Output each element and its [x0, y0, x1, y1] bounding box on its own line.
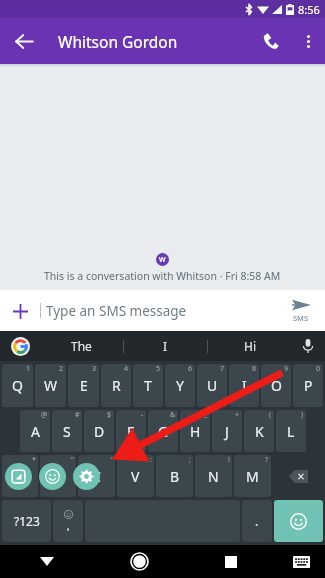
staticText: G [158, 422, 169, 441]
button[interactable]: Home [93, 545, 185, 578]
staticText: $ [107, 410, 112, 420]
staticText: + [235, 410, 240, 420]
staticText: " [71, 455, 74, 465]
staticText: ! [228, 455, 230, 465]
button[interactable]: N [195, 455, 232, 497]
staticText: ) [301, 410, 304, 420]
staticText: _ [204, 410, 208, 420]
button[interactable]: Emoji [274, 500, 323, 542]
button[interactable]: S [52, 410, 82, 452]
staticText: R [112, 376, 121, 395]
staticText: C [92, 467, 101, 486]
button[interactable]: L [276, 410, 306, 452]
staticText: S [63, 422, 71, 441]
button[interactable]: Emoji [39, 463, 66, 490]
button[interactable]: Call [251, 21, 291, 61]
staticText: 7 [220, 364, 225, 374]
button[interactable]: Stickers [5, 463, 32, 490]
button[interactable]: M [234, 455, 271, 497]
staticText: ?123 [14, 513, 40, 529]
button[interactable]: B [156, 455, 193, 497]
button[interactable]: Q [2, 364, 33, 407]
button[interactable]: Settings [73, 463, 100, 490]
button[interactable]: G [148, 410, 178, 452]
staticText: Q [12, 376, 23, 395]
staticText: K [255, 422, 264, 441]
button[interactable]: D [84, 410, 114, 452]
button[interactable]: O [261, 364, 291, 407]
button[interactable]: E [68, 364, 99, 407]
button[interactable]: Y [165, 364, 195, 407]
staticText: E [80, 376, 88, 395]
staticText: 4 [124, 364, 129, 374]
button[interactable]: Voice input [291, 331, 325, 361]
staticText: W [159, 255, 166, 265]
staticText: * [32, 455, 36, 465]
button[interactable]: Type an SMS message [40, 290, 277, 331]
button[interactable]: U [197, 364, 227, 407]
button[interactable]: Send SMS [277, 290, 325, 331]
staticText: B [170, 467, 180, 486]
button[interactable]: P [293, 364, 323, 407]
button[interactable]: A [20, 410, 50, 452]
staticText: @ [41, 410, 48, 420]
staticText: . [255, 513, 259, 529]
staticText: Type an SMS message [46, 302, 187, 320]
staticText: I [242, 376, 247, 395]
staticText: The [71, 338, 92, 354]
button[interactable]: More options [291, 24, 325, 58]
button[interactable]: K [244, 410, 274, 452]
button[interactable]: I [229, 364, 259, 407]
staticText: F [127, 422, 135, 441]
button[interactable]: R [101, 364, 131, 407]
staticText: This is a conversation with Whitson · Fr… [44, 269, 281, 283]
button[interactable]: F [116, 410, 146, 452]
staticText: 6 [188, 364, 193, 374]
button[interactable]: J [212, 410, 242, 452]
button[interactable]: Recent apps [185, 545, 277, 578]
staticText: X [54, 467, 63, 486]
button[interactable]: Hi [208, 331, 291, 361]
staticText: 8:56 [298, 2, 320, 17]
button[interactable]: C [78, 455, 115, 497]
button[interactable]: Hide keyboard [0, 545, 93, 578]
staticText: Y [176, 376, 184, 395]
staticText: U [207, 376, 218, 395]
staticText: - [141, 410, 144, 420]
button[interactable]: I [124, 331, 207, 361]
button[interactable]: Comma [53, 500, 83, 542]
staticText: & [170, 410, 176, 420]
button[interactable]: Google [0, 331, 40, 361]
button[interactable]: Z [2, 455, 38, 497]
staticText: 1 [26, 364, 31, 374]
staticText: 3 [92, 364, 97, 374]
button[interactable]: ?123 [2, 500, 51, 542]
button[interactable]: W [35, 364, 66, 407]
button[interactable]: Backspace [273, 455, 323, 497]
staticText: W [44, 376, 58, 395]
staticText: ? [265, 455, 269, 465]
staticText: 9 [284, 364, 289, 374]
staticText: Hi [244, 338, 256, 354]
staticText: 2 [59, 364, 64, 374]
staticText: ; [189, 455, 191, 465]
button[interactable]: Switch keyboard [277, 545, 325, 578]
button[interactable]: Add attachment [0, 291, 40, 331]
staticText: 0 [316, 364, 321, 374]
staticText: O [271, 376, 282, 395]
button[interactable]: The [40, 331, 123, 361]
staticText: 8 [252, 364, 257, 374]
staticText: J [225, 422, 229, 441]
staticText: ' [111, 455, 113, 465]
button[interactable]: . [242, 500, 272, 542]
staticText: H [190, 422, 201, 441]
button[interactable]: T [133, 364, 163, 407]
staticText: Whitson Gordon [58, 31, 178, 52]
staticText: T [144, 376, 152, 395]
button[interactable]: X [40, 455, 76, 497]
staticText: ( [269, 410, 272, 420]
button[interactable]: Back [5, 22, 43, 60]
button[interactable]: H [180, 410, 210, 452]
button[interactable]: V [117, 455, 154, 497]
